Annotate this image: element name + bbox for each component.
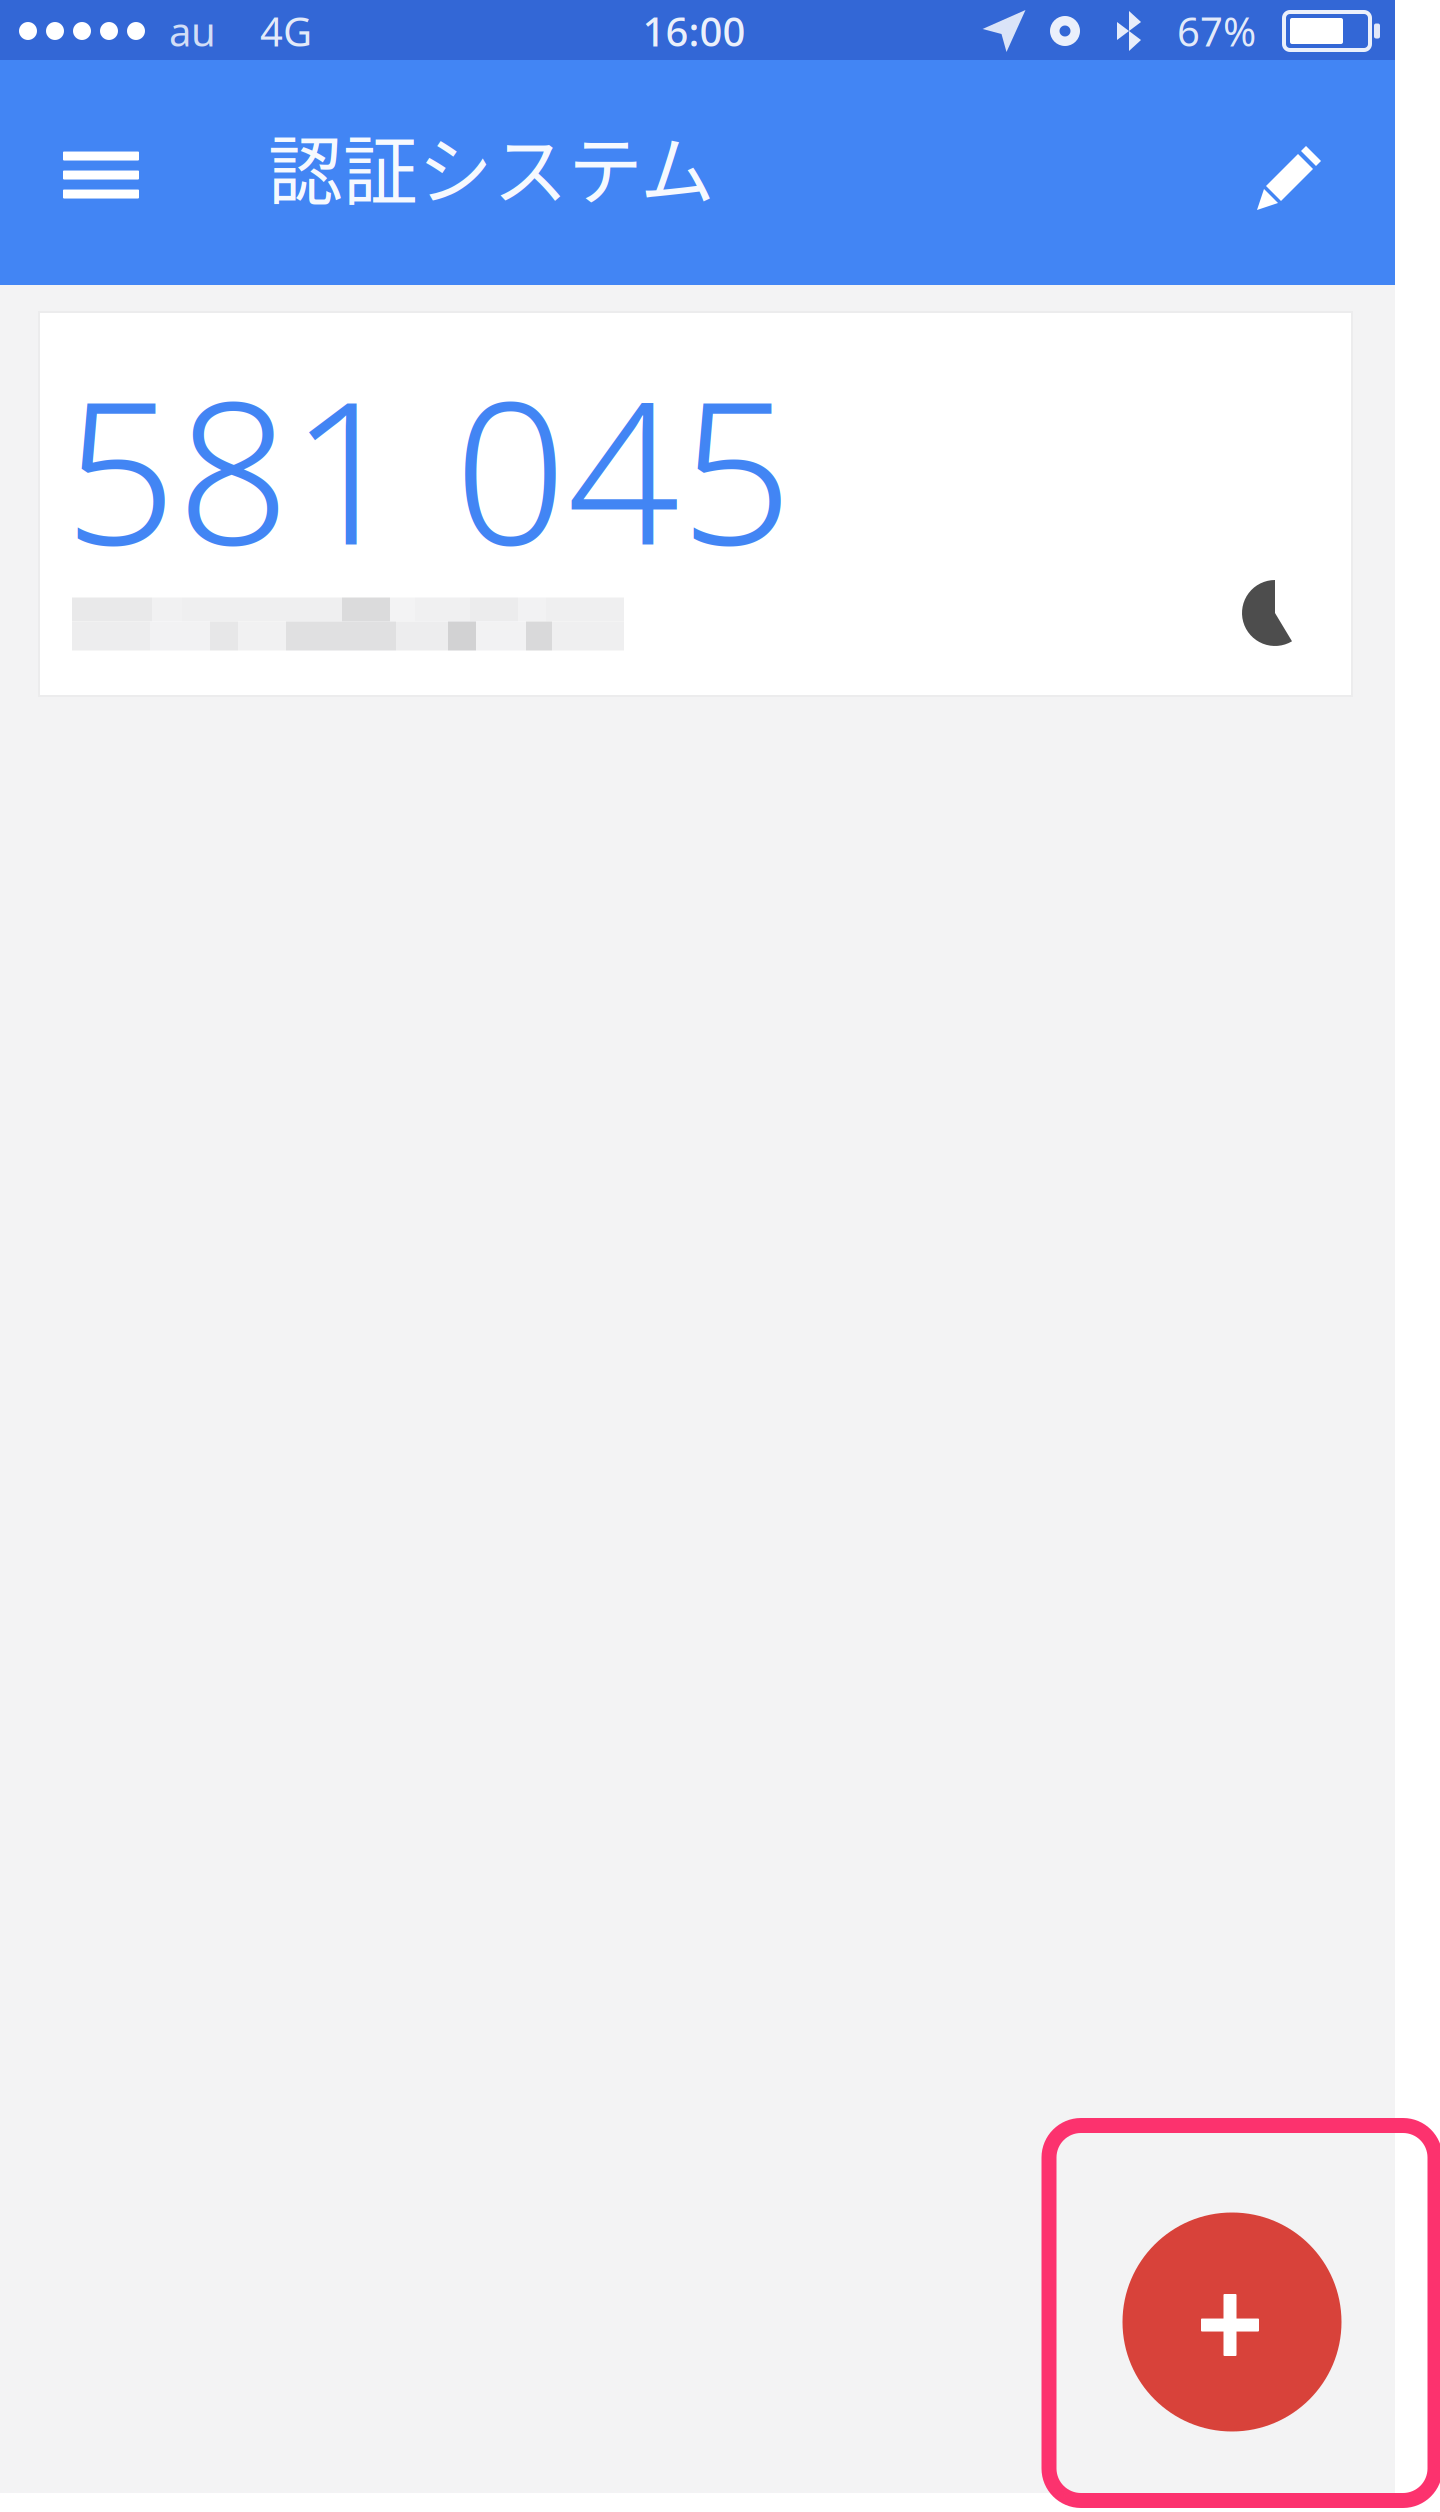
button[interactable]: メニュー [26, 90, 176, 260]
staticText: au [169, 4, 216, 57]
button[interactable]: アカウントを追加 [1122, 2212, 1341, 2431]
button[interactable]: 581 045 [39, 312, 1352, 696]
staticText: 581 045 [64, 337, 793, 599]
staticText: 4G [260, 4, 312, 57]
staticText: 67% [1177, 4, 1256, 57]
staticText: 16:00 [642, 4, 745, 57]
staticText: 認証システム [268, 112, 715, 220]
button[interactable]: 編集 [1214, 93, 1364, 263]
